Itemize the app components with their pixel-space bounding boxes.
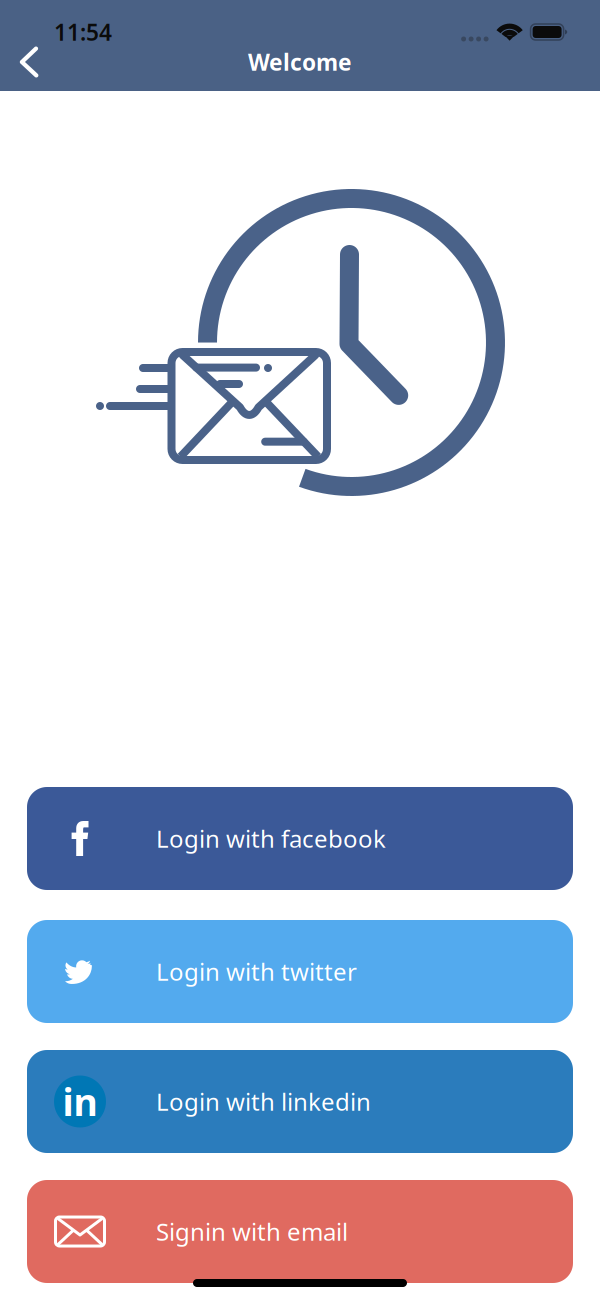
button[interactable]: Login with facebook	[27, 787, 573, 890]
staticText: Signin with email	[156, 1216, 348, 1247]
staticText: Login with linkedin	[156, 1086, 371, 1117]
button[interactable]: Back	[0, 39, 55, 84]
button[interactable]: Signin with email	[27, 1180, 573, 1283]
staticText: Welcome	[248, 47, 352, 77]
button[interactable]: in	[27, 1050, 573, 1153]
button[interactable]: Login with twitter	[27, 920, 573, 1023]
staticText: 11:54	[54, 17, 112, 47]
staticText: Login with facebook	[156, 823, 386, 854]
staticText: in	[62, 1077, 97, 1126]
staticText: Login with twitter	[156, 956, 357, 987]
